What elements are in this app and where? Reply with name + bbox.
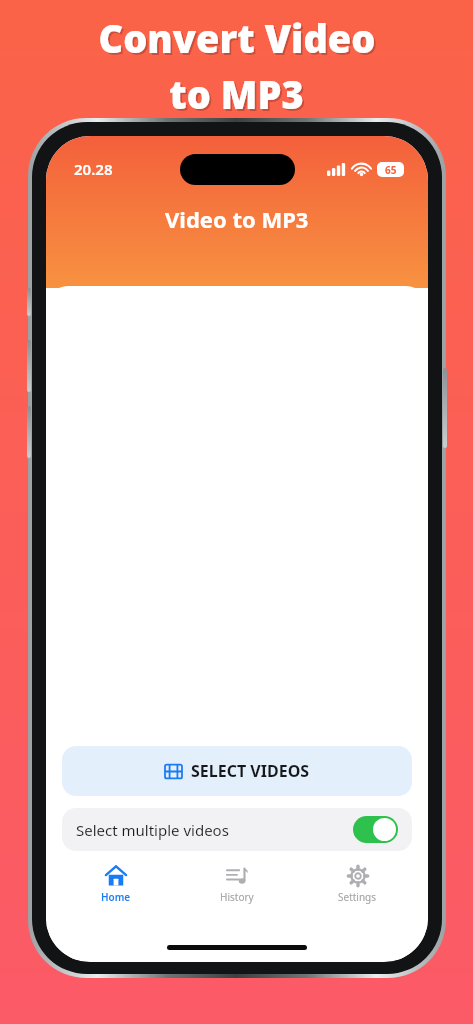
staticText: 65	[385, 163, 397, 177]
staticText: SELECT VIDEOS	[191, 760, 310, 782]
button[interactable]: History	[176, 859, 297, 909]
staticText: History	[220, 890, 254, 904]
staticText: to MP3	[169, 68, 304, 120]
staticText: 20.28	[74, 159, 113, 179]
button[interactable]: Settings	[297, 859, 418, 909]
staticText: Home	[101, 890, 131, 904]
staticText: Convert Video	[100, 14, 378, 66]
staticText: to MP3	[171, 70, 306, 122]
other: Select multiple videos toggle	[353, 816, 398, 843]
button[interactable]: Select multiple videos	[62, 808, 412, 851]
staticText: Video to MP3	[165, 204, 309, 234]
staticText: Convert Video	[98, 12, 376, 64]
button[interactable]: Home	[56, 859, 176, 909]
staticText: Select multiple videos	[76, 820, 229, 840]
button[interactable]: SELECT VIDEOS	[62, 746, 412, 796]
staticText: Settings	[338, 890, 377, 904]
